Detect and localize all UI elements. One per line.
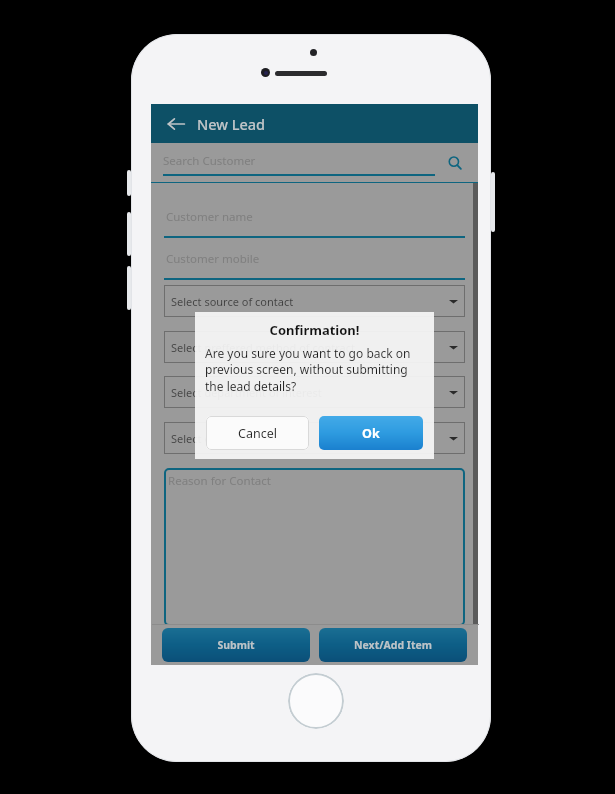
staticText: Cancel (238, 425, 277, 442)
staticText: Submit (217, 638, 255, 652)
button[interactable]: Select source of contact (164, 285, 465, 317)
staticText: Are you sure you want to go back on prev… (205, 345, 421, 395)
button[interactable]: Submit (162, 628, 310, 662)
staticText: Search Customer (163, 153, 256, 169)
staticText: Customer name (166, 209, 253, 225)
button[interactable]: Select preffered method of contract (164, 331, 465, 363)
button[interactable]: Search (443, 151, 467, 175)
button[interactable]: Next/Add Item (319, 628, 467, 662)
button[interactable]: Customer mobile (164, 246, 465, 280)
staticText: Select department of interest (171, 385, 322, 400)
staticText: Select source of contact (171, 294, 294, 309)
staticText: Ok (362, 425, 380, 442)
staticText: Reason for Contact (168, 473, 271, 489)
staticText: Confirmation! (195, 321, 434, 339)
staticText: Select preffered method of contract (171, 340, 355, 355)
button[interactable]: Ok (319, 416, 423, 450)
staticText: Customer mobile (166, 251, 260, 267)
button[interactable]: Reason for Contact (164, 468, 465, 626)
button[interactable]: Select current dealer (164, 422, 465, 454)
staticText: New Lead (197, 114, 266, 134)
button[interactable]: Cancel (206, 416, 309, 450)
staticText: Select current dealer (171, 431, 278, 446)
button[interactable]: Back (159, 107, 193, 141)
staticText: Next/Add Item (354, 638, 432, 652)
button[interactable]: Select department of interest (164, 376, 465, 408)
button[interactable]: Customer name (164, 204, 465, 238)
